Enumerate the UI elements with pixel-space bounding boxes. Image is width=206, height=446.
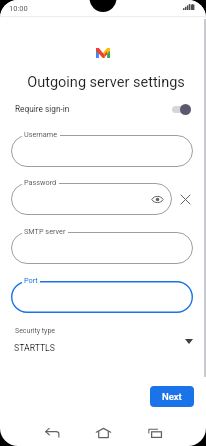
- staticText: Require sign-in: [15, 104, 70, 114]
- staticText: STARTTLS: [14, 343, 55, 353]
- button[interactable]: Clear: [179, 193, 192, 206]
- staticText: Password: [24, 178, 57, 187]
- button[interactable]: Show password: [151, 193, 164, 206]
- staticText: Outgoing server settings: [3, 74, 206, 91]
- staticText: Next: [162, 391, 182, 402]
- button[interactable]: Recents: [143, 421, 167, 445]
- button[interactable]: Port: [11, 281, 193, 313]
- button[interactable]: Home: [91, 421, 115, 445]
- staticText: Username: [24, 130, 58, 139]
- button[interactable]: Back: [40, 421, 64, 445]
- button[interactable]: SMTP server: [11, 232, 193, 264]
- button[interactable]: Require sign-in: [172, 103, 191, 115]
- staticText: Security type: [15, 327, 56, 335]
- staticText: Port: [24, 276, 38, 285]
- staticText: SMTP server: [24, 227, 66, 236]
- staticText: 10:00: [9, 4, 28, 13]
- button[interactable]: Require sign-in: [0, 101, 206, 117]
- button[interactable]: Security type: [0, 322, 206, 360]
- button[interactable]: Username: [11, 135, 193, 167]
- button[interactable]: Password: [11, 183, 172, 215]
- button[interactable]: Next: [150, 386, 194, 407]
